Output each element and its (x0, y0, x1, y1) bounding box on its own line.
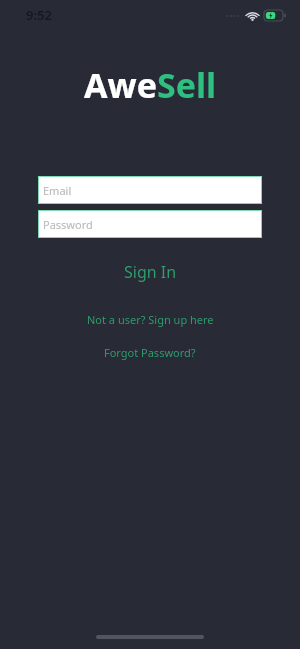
button[interactable]: Sign In (110, 257, 191, 287)
staticText: Sign In (124, 261, 177, 283)
button[interactable]: Not a user? Sign up here (79, 309, 222, 330)
button[interactable]: Password (38, 210, 262, 238)
staticText: Email (43, 183, 72, 198)
button[interactable]: Email (38, 176, 262, 204)
staticText: AweSell (84, 62, 217, 108)
button[interactable]: Forgot Password? (96, 342, 204, 363)
staticText: Forgot Password? (104, 345, 196, 360)
staticText: 9:52 (26, 6, 52, 24)
staticText: Password (43, 217, 93, 232)
staticText: Not a user? Sign up here (87, 312, 214, 327)
